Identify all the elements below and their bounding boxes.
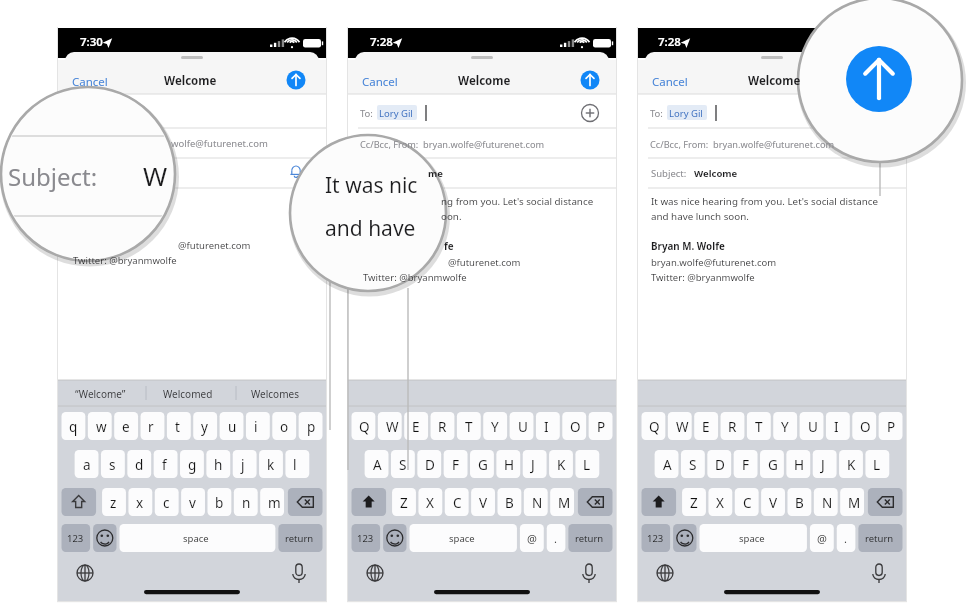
button[interactable]: Cancel xyxy=(358,70,404,92)
staticText: N xyxy=(532,494,543,512)
staticText: Twitter: @bryanmwolfe xyxy=(651,271,755,284)
staticText: c xyxy=(163,494,170,512)
staticText: F xyxy=(742,456,750,474)
staticText: y xyxy=(201,418,208,436)
staticText: Z xyxy=(690,494,698,512)
staticText: bryan.wolfe@futurenet.com xyxy=(651,256,777,269)
staticText: and have lunch soon. xyxy=(651,210,749,223)
staticText: . xyxy=(844,531,847,546)
staticText: b xyxy=(215,494,224,512)
staticText: s xyxy=(109,456,116,474)
staticText: a xyxy=(83,456,91,474)
staticText: Twitter: @bryanmwolfe xyxy=(363,271,467,284)
staticText: I xyxy=(544,418,549,436)
staticText: q xyxy=(69,418,78,436)
staticText: 7:30 xyxy=(80,34,103,50)
staticText: Lory Gil xyxy=(379,107,413,120)
staticText: W xyxy=(386,418,399,436)
staticText: r xyxy=(148,418,154,436)
staticText: D xyxy=(425,456,435,474)
staticText: E xyxy=(412,418,420,436)
staticText: 7:28 xyxy=(370,34,393,50)
staticText: oon. xyxy=(441,210,462,223)
staticText: S xyxy=(399,456,407,474)
staticText: @futurenet.com xyxy=(448,256,521,269)
staticText: Welcomes xyxy=(251,387,299,401)
staticText: z xyxy=(110,494,117,512)
staticText: Bryan M. Wolfe xyxy=(651,240,725,253)
button[interactable]: Cancel xyxy=(648,70,694,92)
staticText: T xyxy=(465,418,473,436)
staticText: X xyxy=(716,494,724,512)
staticText: i xyxy=(254,418,258,436)
staticText: U xyxy=(518,418,528,436)
button[interactable]: Keyboard xyxy=(58,380,326,601)
staticText: E xyxy=(702,418,710,436)
staticText: V xyxy=(769,494,778,512)
staticText: o xyxy=(280,418,289,436)
button[interactable]: Send xyxy=(866,70,888,92)
staticText: return xyxy=(285,532,314,545)
staticText: g xyxy=(188,456,197,474)
staticText: Cancel xyxy=(652,74,688,90)
staticText: Cancel xyxy=(362,74,398,90)
staticText: It was nice hearing from you. Let's soci… xyxy=(651,195,879,208)
button[interactable]: Keyboard xyxy=(638,380,906,601)
staticText: w xyxy=(96,418,107,436)
staticText: J xyxy=(531,456,535,474)
button[interactable]: Keyboard xyxy=(348,380,616,601)
staticText: v xyxy=(189,494,196,512)
staticText: Z xyxy=(400,494,408,512)
staticText: ng from you. Let's social distance xyxy=(441,195,594,208)
button[interactable]: Send xyxy=(286,70,308,92)
staticText: h xyxy=(214,456,223,474)
staticText: f xyxy=(162,456,167,474)
staticText: @futurenet.com xyxy=(178,239,251,252)
staticText: t xyxy=(175,418,180,436)
staticText: L xyxy=(583,456,591,474)
staticText: Welcome xyxy=(694,167,738,180)
staticText: me xyxy=(428,167,443,180)
staticText: To: xyxy=(650,107,663,120)
staticText: wolfe@futurenet.com xyxy=(171,137,268,150)
staticText: Y xyxy=(781,418,789,436)
staticText: Subject: xyxy=(8,160,104,193)
staticText: u xyxy=(228,418,237,436)
staticText: G xyxy=(478,456,488,474)
staticText: Cc/Bcc, From: bryan.wolfe@futurenet.com xyxy=(650,138,835,151)
staticText: R xyxy=(438,418,447,436)
staticText: K xyxy=(847,456,856,474)
staticText: Welcome xyxy=(748,73,801,89)
staticText: “Welcome” xyxy=(75,387,126,401)
staticText: O xyxy=(570,418,581,436)
staticText: W xyxy=(143,158,168,193)
staticText: Q xyxy=(649,418,660,436)
staticText: G xyxy=(768,456,778,474)
staticText: space xyxy=(449,532,475,545)
staticText: m xyxy=(268,494,281,512)
staticText: O xyxy=(860,418,871,436)
staticText: It was nic xyxy=(325,171,418,200)
staticText: 123 xyxy=(67,532,84,545)
button[interactable]: Send xyxy=(576,70,598,92)
staticText: 123 xyxy=(357,532,374,545)
staticText: space xyxy=(183,532,209,545)
staticText: H xyxy=(504,456,515,474)
staticText: 7:28 xyxy=(658,34,681,50)
staticText: D xyxy=(715,456,725,474)
staticText: A xyxy=(373,456,382,474)
staticText: M xyxy=(558,494,571,512)
staticText: T xyxy=(755,418,763,436)
staticText: L xyxy=(873,456,881,474)
button[interactable]: Cancel xyxy=(68,70,114,92)
staticText: K xyxy=(557,456,566,474)
staticText: x xyxy=(136,494,144,512)
staticText: Y xyxy=(491,418,499,436)
staticText: C xyxy=(743,494,752,512)
staticText: return xyxy=(575,532,604,545)
staticText: e xyxy=(122,418,130,436)
staticText: Cancel xyxy=(72,74,108,90)
staticText: P xyxy=(597,418,606,436)
staticText: F xyxy=(452,456,460,474)
staticText: B xyxy=(505,494,514,512)
